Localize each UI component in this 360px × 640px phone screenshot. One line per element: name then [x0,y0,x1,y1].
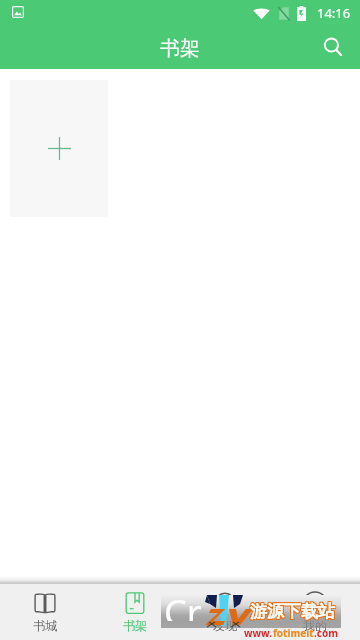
staticText: 书城 [33,618,57,633]
staticText: www. [244,626,273,640]
button[interactable]: 发现 [180,584,270,640]
staticText: 发现 [213,618,237,633]
staticText: Cr [164,595,202,621]
staticText: 游源下载站 [251,600,336,621]
button[interactable]: Search [316,30,350,64]
staticText: 游源下载站 [250,601,335,622]
staticText: .com [314,626,338,640]
staticText: 游源下载站 [251,601,336,622]
button[interactable]: 书城 [0,584,90,640]
staticText: 游源下载站 [249,601,334,622]
staticText: 我的 [303,618,327,633]
button[interactable]: 我的 [270,584,360,640]
staticText: 游源下载站 [250,602,335,623]
staticText: 14:16 [317,4,351,22]
staticText: 游源下载站 [250,600,335,621]
staticText: 书架 [123,618,147,633]
staticText: 游源下载站 [249,602,334,623]
button[interactable]: 书架 [90,584,180,640]
button[interactable]: Add book [10,80,108,217]
staticText: 游源下载站 [251,602,336,623]
staticText: fotimeit [273,626,314,640]
staticText: 游源下载站 [249,600,334,621]
staticText: 书架 [160,36,200,61]
